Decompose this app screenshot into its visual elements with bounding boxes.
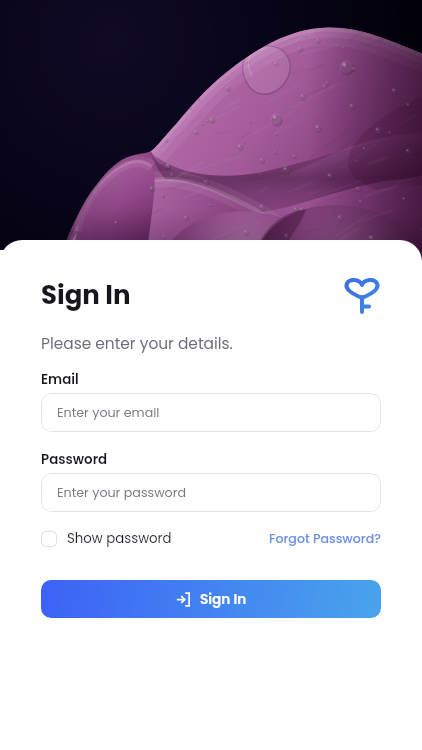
staticText: Sign In xyxy=(41,277,131,313)
staticText: Email xyxy=(41,370,79,389)
button[interactable]: Enter your email xyxy=(41,393,381,432)
staticText: Show password xyxy=(67,529,172,548)
button[interactable]: App logo xyxy=(343,276,381,314)
staticText: Enter your password xyxy=(57,484,186,502)
staticText: Enter your email xyxy=(57,404,160,422)
button[interactable]: Enter your password xyxy=(41,473,381,512)
button[interactable]: Show password xyxy=(41,529,172,548)
staticText: Please enter your details. xyxy=(41,333,233,355)
staticText: Sign In xyxy=(200,590,247,609)
button[interactable]: Sign In xyxy=(41,580,381,618)
button[interactable]: Forgot Password? xyxy=(269,530,381,548)
staticText: Password xyxy=(41,450,108,469)
